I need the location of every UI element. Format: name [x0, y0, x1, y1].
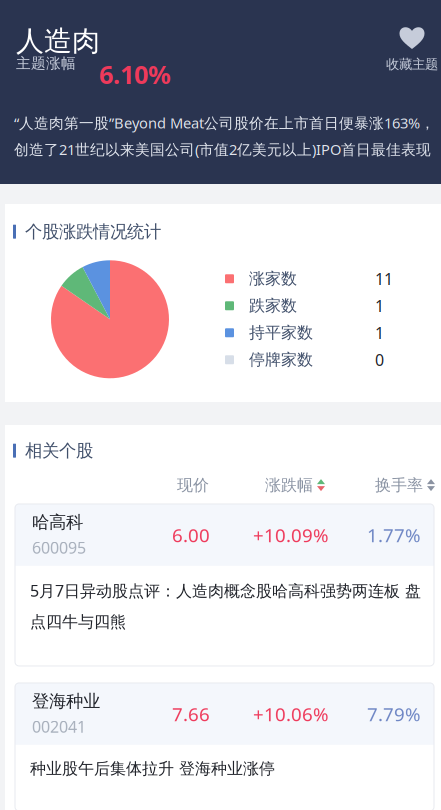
staticText: 个股涨跌情况统计 — [25, 221, 161, 242]
staticText: 现价 — [177, 475, 209, 495]
staticText: 跌家数 — [249, 296, 297, 316]
button[interactable]: 收藏主题 — [386, 26, 438, 72]
staticText: 收藏主题 — [386, 56, 438, 72]
staticText: 1 — [375, 322, 384, 343]
staticText: 主题涨幅 — [16, 54, 76, 72]
staticText: 相关个股 — [25, 440, 93, 461]
staticText: +10.09% — [253, 522, 329, 547]
button[interactable]: 换手率 — [325, 475, 435, 495]
staticText: 停牌家数 — [249, 350, 313, 370]
staticText: 6.00 — [172, 522, 210, 547]
button[interactable]: 涨跌幅 — [209, 475, 325, 495]
staticText: 1.77% — [367, 522, 421, 547]
staticText: “人造肉第一股”Beyond Meat公司股价在上市首日便暴涨163%，创造了2… — [14, 113, 435, 159]
staticText: 持平家数 — [249, 323, 313, 343]
staticText: 600095 — [32, 537, 86, 558]
staticText: 11 — [375, 268, 393, 289]
staticText: 登海种业 — [32, 691, 100, 712]
staticText: 哈高科 — [32, 512, 83, 533]
staticText: 7.66 — [172, 701, 210, 726]
staticText: 人造肉 — [16, 24, 100, 58]
staticText: 6.10% — [99, 57, 171, 91]
staticText: +10.06% — [253, 701, 329, 726]
staticText: 002041 — [32, 716, 86, 737]
staticText: 7.79% — [367, 701, 421, 726]
button[interactable]: 登海种业 — [15, 683, 434, 810]
staticText: 换手率 — [375, 475, 423, 495]
staticText: 涨跌幅 — [265, 475, 313, 495]
staticText: 5月7日异动股点评：人造肉概念股哈高科强势两连板 盘点四牛与四熊 — [30, 580, 421, 632]
staticText: 0 — [375, 349, 384, 370]
staticText: 1 — [375, 295, 384, 316]
staticText: 种业股午后集体拉升 登海种业涨停 — [30, 759, 275, 779]
button[interactable]: 哈高科 — [15, 504, 434, 666]
staticText: 涨家数 — [249, 269, 297, 289]
